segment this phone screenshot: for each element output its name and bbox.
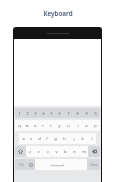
button[interactable]: r: [39, 120, 47, 131]
button[interactable]: z: [26, 146, 34, 157]
button[interactable]: Shift: [15, 146, 26, 157]
staticText: o: [85, 123, 88, 128]
button[interactable]: 7: [64, 108, 73, 118]
staticText: e: [34, 123, 37, 128]
button[interactable]: c: [43, 146, 52, 157]
staticText: 2: [26, 111, 29, 116]
staticText: i: [77, 123, 79, 128]
button[interactable]: b: [61, 146, 70, 157]
staticText: j: [73, 136, 75, 141]
staticText: 9: [85, 111, 88, 116]
button[interactable]: q: [15, 120, 23, 131]
staticText: h: [63, 136, 66, 141]
button[interactable]: e: [31, 120, 39, 131]
button[interactable]: 0: [91, 108, 100, 118]
staticText: y: [58, 123, 61, 128]
button[interactable]: k: [78, 133, 87, 144]
button[interactable]: h: [60, 133, 69, 144]
staticText: g: [54, 136, 57, 141]
button[interactable]: 1: [15, 108, 23, 118]
staticText: v: [55, 149, 58, 154]
button[interactable]: 5: [47, 108, 55, 118]
staticText: u: [67, 123, 70, 128]
button[interactable]: 9: [82, 108, 91, 118]
button[interactable]: n: [70, 146, 79, 157]
staticText: m: [82, 149, 86, 154]
button[interactable]: p: [91, 120, 100, 131]
button[interactable]: t: [47, 120, 55, 131]
button[interactable]: 8: [73, 108, 82, 118]
button[interactable]: d: [35, 133, 43, 144]
staticText: x: [37, 149, 40, 154]
button[interactable]: y: [55, 120, 64, 131]
button[interactable]: o: [82, 120, 91, 131]
staticText: z: [29, 149, 31, 154]
staticText: Keyboard: [43, 9, 73, 17]
button[interactable]: Ctrl: [15, 159, 27, 170]
staticText: k: [81, 136, 84, 141]
button[interactable]: v: [52, 146, 61, 157]
button[interactable]: w: [23, 120, 31, 131]
button[interactable]: l: [87, 133, 96, 144]
button[interactable]: 4: [39, 108, 47, 118]
staticText: p: [94, 123, 97, 128]
button[interactable]: Space: [35, 159, 79, 170]
staticText: Done: [90, 163, 98, 167]
button[interactable]: i: [73, 120, 82, 131]
button[interactable]: x: [34, 146, 43, 157]
button[interactable]: s: [27, 133, 35, 144]
staticText: b: [64, 149, 67, 154]
staticText: 1: [18, 111, 21, 116]
staticText: l: [91, 136, 93, 141]
staticText: 0: [94, 111, 97, 116]
staticText: 6: [58, 111, 61, 116]
staticText: d: [38, 136, 41, 141]
staticText: .: [82, 162, 84, 167]
button[interactable]: a: [19, 133, 27, 144]
staticText: s: [30, 136, 32, 141]
staticText: a: [22, 136, 25, 141]
button[interactable]: Backspace: [88, 146, 100, 157]
staticText: 8: [76, 111, 79, 116]
staticText: f: [46, 136, 48, 141]
button[interactable]: Done: [87, 159, 100, 170]
button[interactable]: 6: [55, 108, 64, 118]
button[interactable]: u: [64, 120, 73, 131]
staticText: 7: [67, 111, 70, 116]
button[interactable]: g: [51, 133, 60, 144]
staticText: q: [18, 123, 21, 128]
staticText: r: [42, 123, 44, 128]
button[interactable]: Switch input language: [27, 159, 35, 170]
staticText: n: [73, 149, 76, 154]
staticText: c: [47, 149, 49, 154]
staticText: 4: [42, 111, 45, 116]
staticText: t: [50, 123, 52, 128]
staticText: w: [25, 123, 29, 128]
button[interactable]: 2: [23, 108, 31, 118]
staticText: 3: [34, 111, 37, 116]
staticText: 5: [50, 111, 53, 116]
button[interactable]: m: [79, 146, 88, 157]
button[interactable]: 3: [31, 108, 39, 118]
button[interactable]: f: [43, 133, 51, 144]
staticText: Ctrl: [19, 163, 24, 167]
button[interactable]: j: [69, 133, 78, 144]
